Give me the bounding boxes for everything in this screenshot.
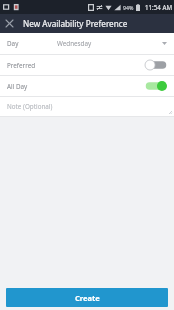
staticText: Create (75, 293, 100, 303)
staticText: Wednesday (57, 39, 92, 48)
button[interactable]: Preferred (0, 55, 174, 75)
button[interactable]: Day (0, 33, 174, 54)
staticText: 94% (123, 4, 134, 11)
staticText: Preferred (7, 61, 36, 70)
staticText: Day (7, 39, 19, 48)
staticText: 11:54 AM (145, 3, 172, 11)
button[interactable]: Close (0, 14, 19, 33)
button[interactable]: Note (Optional) (0, 97, 174, 116)
staticText: Note (Optional) (7, 102, 53, 111)
button[interactable]: All Day (0, 76, 174, 96)
button[interactable]: Create (6, 288, 168, 307)
staticText: New Availability Preference (23, 18, 128, 29)
staticText: All Day (7, 82, 28, 91)
